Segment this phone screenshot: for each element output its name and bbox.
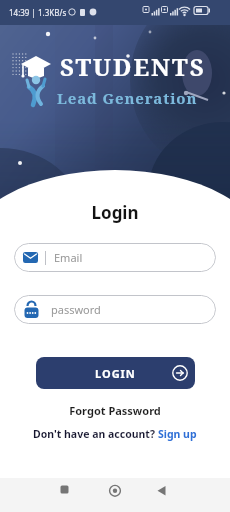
button[interactable]: LOGIN	[36, 357, 195, 389]
button[interactable]	[76, 478, 153, 512]
button[interactable]	[153, 478, 230, 512]
staticText: Don't have an account?	[33, 427, 158, 441]
staticText: STUDENTS	[60, 50, 206, 83]
staticText: 14:39 | 1.3KB/s	[9, 7, 67, 18]
staticText: Email	[54, 250, 83, 265]
button[interactable]: Forgot Password	[0, 403, 230, 418]
staticText: password	[51, 302, 101, 317]
staticText: Lead Generation	[57, 88, 198, 108]
button[interactable]: password	[14, 295, 216, 324]
staticText: LOGIN	[95, 366, 136, 381]
button[interactable]: Email	[14, 243, 216, 272]
button[interactable]	[0, 478, 76, 512]
button[interactable]: Sign up	[158, 427, 197, 441]
staticText: Login	[0, 201, 230, 224]
